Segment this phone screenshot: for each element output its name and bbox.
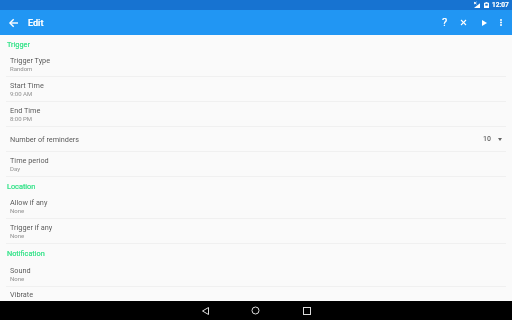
staticText: 12:07 <box>492 1 509 9</box>
staticText: Random <box>10 65 33 72</box>
button[interactable]: Notification <box>0 244 512 261</box>
button[interactable]: Vibrate <box>0 287 512 301</box>
button[interactable]: Home <box>246 301 265 320</box>
staticText: Trigger if any <box>10 223 53 232</box>
staticText: 8:00 PM <box>10 115 33 122</box>
staticText: None <box>10 207 25 214</box>
staticText: None <box>10 232 25 239</box>
button[interactable]: Location <box>0 177 512 194</box>
staticText: Number of reminders <box>10 135 80 144</box>
button[interactable]: Discard <box>452 10 471 35</box>
staticText: 10 <box>483 135 491 143</box>
staticText: None <box>10 275 25 282</box>
staticText: Location <box>7 182 36 191</box>
staticText: Notification <box>7 249 45 258</box>
button[interactable]: Number of reminders <box>0 127 512 152</box>
button[interactable]: Recent apps <box>297 301 316 320</box>
staticText: Start Time <box>10 81 44 90</box>
button[interactable]: Run <box>471 10 490 35</box>
staticText: ? <box>442 16 448 29</box>
button[interactable]: Trigger Type <box>0 52 512 77</box>
staticText: Vibrate <box>10 290 34 299</box>
staticText: Day <box>10 165 20 172</box>
button[interactable]: Back <box>196 301 215 320</box>
button[interactable]: Help <box>433 10 452 35</box>
button[interactable]: More options <box>490 10 509 35</box>
staticText: Time period <box>10 156 49 165</box>
button[interactable]: Allow if any <box>0 194 512 219</box>
button[interactable]: Navigate up <box>0 10 28 35</box>
button[interactable]: Start Time <box>0 77 512 102</box>
staticText: Trigger Type <box>10 56 51 65</box>
staticText: Edit <box>28 18 44 29</box>
button[interactable]: Sound <box>0 261 512 287</box>
staticText: Trigger <box>7 40 30 49</box>
button[interactable]: Trigger <box>0 35 512 52</box>
staticText: Sound <box>10 266 31 275</box>
staticText: 9:00 AM <box>10 90 33 97</box>
button[interactable]: Trigger if any <box>0 219 512 244</box>
button[interactable]: End Time <box>0 102 512 127</box>
staticText: End Time <box>10 106 41 115</box>
staticText: Allow if any <box>10 198 48 207</box>
button[interactable]: Time period <box>0 152 512 177</box>
